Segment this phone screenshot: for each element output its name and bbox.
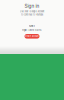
staticText: Next	[29, 24, 35, 27]
button[interactable]: Next	[29, 24, 35, 27]
button[interactable]: English (United States)	[22, 29, 42, 31]
staticText: Create account	[25, 35, 39, 37]
staticText: Use your Google Account	[19, 10, 44, 13]
staticText: Sign in	[24, 3, 39, 9]
staticText: English (United States)	[22, 29, 42, 31]
staticText: to continue to YouTube	[21, 13, 43, 16]
button[interactable]: Create account	[24, 34, 39, 39]
